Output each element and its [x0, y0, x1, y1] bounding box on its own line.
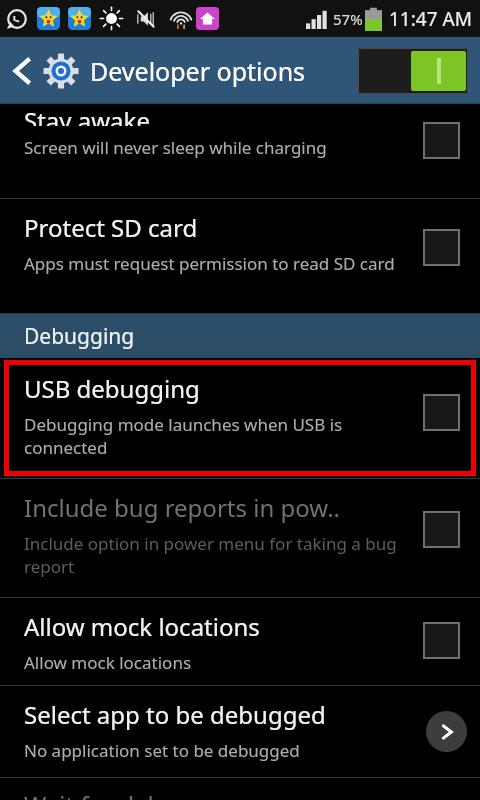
staticText: Apps must request permission to read SD … — [24, 252, 395, 275]
staticText: Developer options — [90, 54, 306, 88]
button[interactable]: Stay awake — [0, 104, 480, 198]
staticText: No application set to be debugged — [24, 739, 300, 762]
staticText: Allow mock locations — [24, 651, 192, 674]
button[interactable]: Toggle checkbox — [423, 622, 460, 659]
staticText: Screen will never sleep while charging — [24, 136, 327, 159]
staticText: Allow mock locations — [24, 610, 260, 643]
button[interactable]: Toggle checkbox — [423, 394, 460, 431]
button[interactable]: Open — [426, 711, 467, 752]
staticText: Protect SD card — [24, 211, 198, 244]
button[interactable]: Select app to be debugged — [0, 686, 480, 777]
staticText: USB debugging — [24, 372, 200, 405]
button[interactable]: Allow mock locations — [0, 598, 480, 685]
button[interactable]: Toggle checkbox — [423, 122, 460, 159]
staticText: Wait for debugger — [24, 788, 231, 800]
button[interactable]: Include bug reports in pow.. — [0, 479, 480, 597]
button[interactable]: Toggle checkbox — [423, 511, 460, 548]
button[interactable]: Wait for debugger — [0, 778, 480, 800]
staticText: 57% — [333, 9, 363, 29]
button[interactable]: Back — [0, 48, 36, 94]
button[interactable]: Protect SD card — [0, 199, 480, 313]
button[interactable]: Developer options on/off — [358, 48, 468, 94]
staticText: Include bug reports in pow.. — [24, 491, 341, 524]
staticText: Stay awake — [24, 104, 150, 126]
staticText: Select app to be debugged — [24, 698, 326, 731]
staticText: 11:47 AM — [389, 6, 472, 32]
staticText: Debugging — [24, 322, 135, 351]
staticText: Debugging mode launches when USB is conn… — [24, 413, 406, 459]
button[interactable]: Toggle checkbox — [423, 229, 460, 266]
staticText: Include option in power menu for taking … — [24, 532, 410, 578]
button[interactable]: USB debugging — [4, 360, 476, 476]
